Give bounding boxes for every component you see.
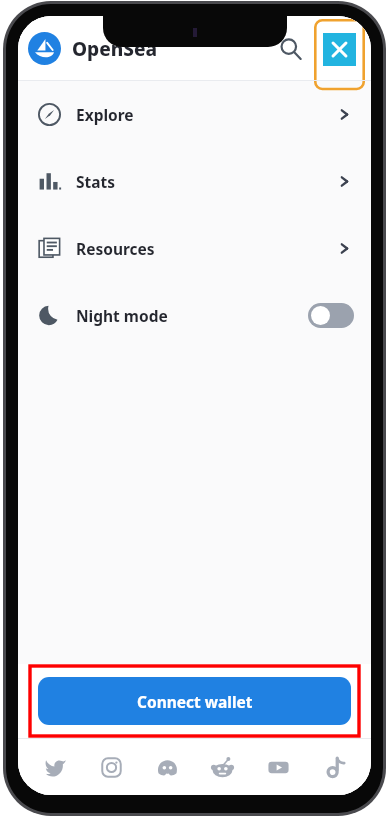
button[interactable]: Night mode [18,282,371,349]
button[interactable]: Close menu [323,33,356,66]
button[interactable]: Discord [148,748,186,786]
button[interactable]: Reddit [203,748,241,786]
staticText: Night mode [76,305,168,326]
button[interactable]: Stats [18,148,371,215]
button[interactable]: OpenSea home [28,32,61,65]
button[interactable]: Search [270,28,312,70]
staticText: Stats [76,171,116,192]
button[interactable]: Resources [18,215,371,282]
button[interactable]: Explore [18,81,371,148]
button[interactable]: Toggle night mode [308,303,354,328]
staticText: Connect wallet [137,691,253,712]
button[interactable]: Instagram [92,748,130,786]
button[interactable]: Twitter [36,748,74,786]
button[interactable]: YouTube [259,748,297,786]
staticText: Resources [76,238,155,259]
button[interactable]: Connect wallet [38,677,351,725]
button[interactable]: TikTok [315,748,353,786]
staticText: Explore [76,104,134,125]
staticText: OpenSea [72,36,158,62]
